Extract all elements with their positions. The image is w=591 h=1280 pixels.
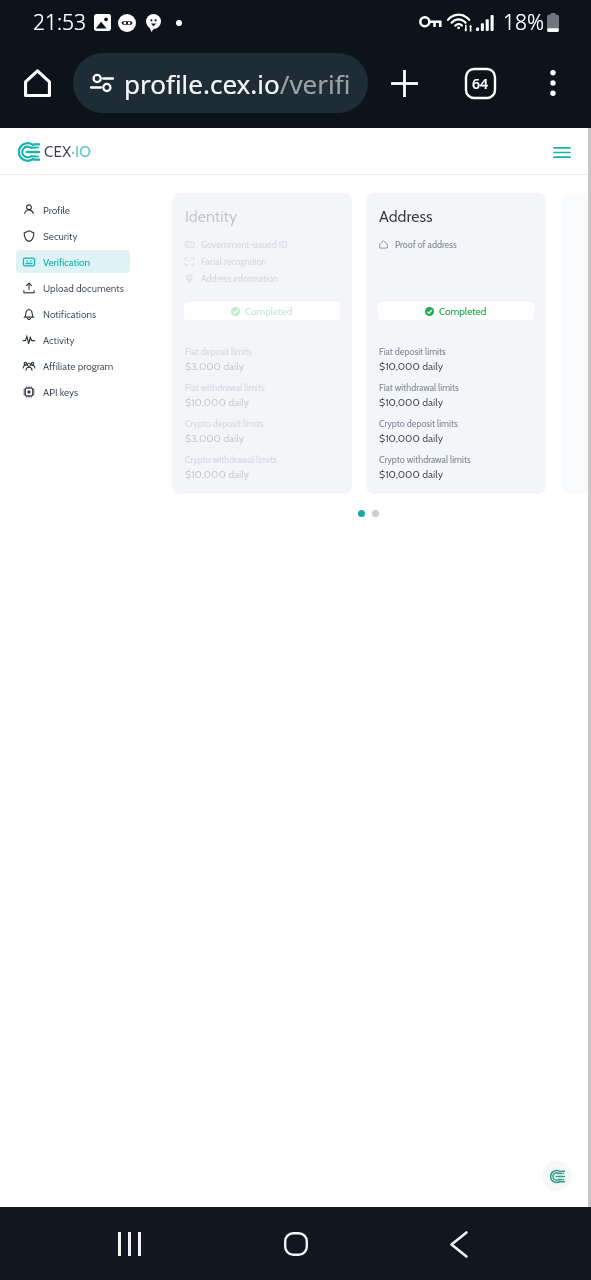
staticText: $3,000 daily xyxy=(185,432,245,445)
button[interactable]: Security xyxy=(16,224,130,247)
staticText: CEX·IO xyxy=(44,143,92,161)
staticText: Fiat deposit limits xyxy=(185,346,252,357)
staticText: Crypto withdrawal limits xyxy=(185,454,277,465)
button[interactable]: Tabs xyxy=(460,63,500,103)
staticText: Address xyxy=(379,207,433,226)
button[interactable]: Notifications xyxy=(16,302,130,325)
button[interactable]: Affiliate program xyxy=(16,354,130,377)
staticText: $10,000 daily xyxy=(379,468,443,481)
button[interactable]: Address xyxy=(366,193,546,494)
staticText: Address information xyxy=(201,273,278,284)
staticText: $3,000 daily xyxy=(185,360,245,373)
staticText: Identity xyxy=(185,207,237,226)
button[interactable]: New tab xyxy=(384,63,424,103)
button[interactable]: Verification xyxy=(16,250,130,273)
staticText: Crypto deposit limits xyxy=(379,418,458,429)
staticText: Proof of address xyxy=(395,239,457,250)
staticText: Fiat deposit limits xyxy=(379,346,446,357)
button[interactable]: API keys xyxy=(16,380,130,403)
staticText: Crypto deposit limits xyxy=(185,418,264,429)
button[interactable]: Upload documents xyxy=(16,276,130,299)
staticText: Facial recognition xyxy=(201,256,267,267)
staticText: API keys xyxy=(43,386,79,398)
button[interactable]: Profile xyxy=(16,198,130,221)
button[interactable]: Home xyxy=(18,64,56,102)
staticText: $10,000 daily xyxy=(185,468,249,481)
staticText: Fiat withdrawal limits xyxy=(185,382,265,393)
button[interactable]: More options xyxy=(533,63,573,103)
staticText: Activity xyxy=(43,334,75,346)
staticText: $10,000 daily xyxy=(379,360,443,373)
staticText: Profile xyxy=(43,204,70,216)
staticText: Completed xyxy=(439,305,487,317)
staticText: Security xyxy=(43,230,78,242)
button[interactable]: Open support chat xyxy=(542,1161,572,1191)
staticText: $10,000 daily xyxy=(379,396,443,409)
staticText: Government-issued ID xyxy=(201,239,288,250)
button[interactable]: Home xyxy=(267,1215,325,1273)
button[interactable]: Activity xyxy=(16,328,130,351)
button[interactable]: CEX·IO xyxy=(16,138,96,166)
staticText: 18% xyxy=(503,8,545,37)
staticText: Crypto withdrawal limits xyxy=(379,454,471,465)
button[interactable]: Menu xyxy=(547,137,577,167)
staticText: $10,000 daily xyxy=(379,432,443,445)
staticText: profile.cex.io/verifi xyxy=(124,66,351,101)
staticText: Fiat withdrawal limits xyxy=(379,382,459,393)
button[interactable]: Back xyxy=(430,1215,488,1273)
staticText: $10,000 daily xyxy=(185,396,249,409)
staticText: Notifications xyxy=(43,308,97,320)
staticText: Verification xyxy=(43,256,91,268)
button[interactable]: profile.cex.io/verifi xyxy=(73,53,368,113)
staticText: 64 xyxy=(472,74,489,93)
staticText: Affiliate program xyxy=(43,360,114,372)
button[interactable]: Identity xyxy=(172,193,352,494)
staticText: Upload documents xyxy=(43,282,124,294)
staticText: Completed xyxy=(245,305,293,317)
staticText: 21:53 xyxy=(33,8,87,37)
button[interactable]: Recents xyxy=(100,1215,158,1273)
